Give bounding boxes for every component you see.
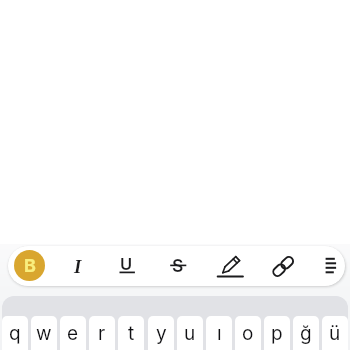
staticText: u [184,322,196,345]
staticText: U [120,254,133,274]
staticText: ü [329,322,341,345]
staticText: r [98,322,106,345]
staticText: ı [217,322,222,345]
staticText: I [74,256,82,277]
staticText: o [242,322,254,345]
staticText: y [156,322,167,345]
staticText: t [128,322,135,345]
staticText: S [172,255,184,276]
staticText: ğ [300,322,312,345]
staticText: p [271,322,283,345]
staticText: w [36,322,52,345]
staticText: e [67,322,79,345]
staticText: B [24,255,36,277]
staticText: q [9,322,21,345]
